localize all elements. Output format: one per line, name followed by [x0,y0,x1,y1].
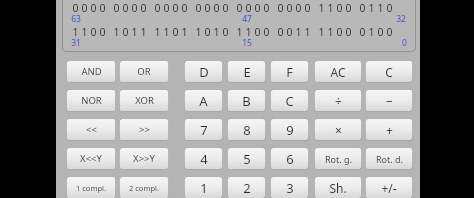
button[interactable]: AND [66,60,116,83]
button[interactable]: E [227,60,266,83]
staticText: 32 [396,13,406,25]
button[interactable]: Rot. g. [314,147,362,170]
button[interactable]: OR [119,60,169,83]
staticText: 47 [242,13,252,25]
staticText: E [243,63,251,81]
staticText: 1 [318,25,325,39]
staticText: D [199,63,209,81]
staticText: 1 [245,25,252,39]
button[interactable]: 2 compl. [119,176,169,198]
button[interactable]: × [314,118,362,141]
button[interactable]: << [66,118,116,141]
button[interactable]: C [365,60,413,83]
staticText: 31 [71,37,81,49]
staticText: 1 [368,1,375,15]
staticText: 3 [286,179,294,197]
staticText: 0 [99,25,106,39]
staticText: 1 [236,25,243,39]
button[interactable]: 8 [227,118,266,141]
staticText: 0 [345,1,352,15]
staticText: Rot. d. [376,153,403,165]
button[interactable]: 9 [270,118,309,141]
staticText: × [335,122,342,138]
staticText: C [385,64,393,80]
staticText: 0 [204,25,211,39]
staticText: 0 [113,1,120,15]
staticText: 1 [81,25,88,39]
staticText: − [386,93,393,109]
staticText: NOR [81,94,102,107]
button[interactable]: ÷ [314,89,362,112]
staticText: 0 [377,25,384,39]
button[interactable]: 1 compl. [66,176,116,198]
staticText: 4 [200,150,208,168]
button[interactable]: − [365,89,413,112]
staticText: 0 [81,1,88,15]
staticText: 0 [163,1,170,15]
button[interactable]: 5 [227,147,266,170]
button[interactable]: F [270,60,309,83]
button[interactable]: B [227,89,266,112]
staticText: 1 [377,1,384,15]
button[interactable]: X<<Y [66,147,116,170]
staticText: 0 [99,1,106,15]
staticText: 0 [140,1,147,15]
button[interactable]: 1 [184,176,223,198]
staticText: 0 [195,1,202,15]
staticText: 0 [72,1,79,15]
staticText: Sh. [329,180,347,196]
staticText: 1 [181,25,188,39]
staticText: 1 [327,25,334,39]
button[interactable]: X>>Y [119,147,169,170]
button[interactable]: Rot. d. [365,147,413,170]
button[interactable]: 4 [184,147,223,170]
staticText: 1 compl. [76,183,106,193]
button[interactable]: C [270,89,309,112]
staticText: 0 [295,1,302,15]
staticText: 0 [386,1,393,15]
staticText: 0 [90,1,97,15]
button[interactable]: 0 [62,0,416,52]
staticText: 0 [263,1,270,15]
staticText: 0 [304,1,311,15]
button[interactable]: NOR [66,89,116,112]
button[interactable]: 3 [270,176,309,198]
staticText: C [285,92,294,110]
staticText: 1 [72,25,79,39]
button[interactable]: XOR [119,89,169,112]
button[interactable]: + [365,118,413,141]
staticText: 0 [254,25,261,39]
staticText: << [86,123,97,136]
button[interactable]: >> [119,118,169,141]
staticText: 0 [345,25,352,39]
staticText: 0 [359,1,366,15]
staticText: F [286,63,293,81]
staticText: B [242,92,251,110]
button[interactable]: D [184,60,223,83]
button[interactable]: 2 [227,176,266,198]
button[interactable]: 6 [270,147,309,170]
staticText: A [199,92,208,110]
staticText: 0 [172,1,179,15]
button[interactable]: 7 [184,118,223,141]
button[interactable]: Sh. [314,176,362,198]
staticText: XOR [135,94,154,107]
staticText: 0 [222,1,229,15]
staticText: 1 [154,25,161,39]
staticText: 1 [195,25,202,39]
staticText: 1 [131,25,138,39]
staticText: 0 [181,1,188,15]
staticText: 0 [131,1,138,15]
button[interactable]: A [184,89,223,112]
staticText: 0 [286,25,293,39]
staticText: 1 [213,25,220,39]
staticText: 0 [172,25,179,39]
button[interactable]: +/- [365,176,413,198]
staticText: 63 [71,13,81,25]
staticText: 1 [200,179,208,197]
staticText: 0 [402,37,407,49]
button[interactable]: AC [314,60,362,83]
staticText: 1 [295,25,302,39]
staticText: 0 [277,25,284,39]
staticText: OR [137,65,151,78]
